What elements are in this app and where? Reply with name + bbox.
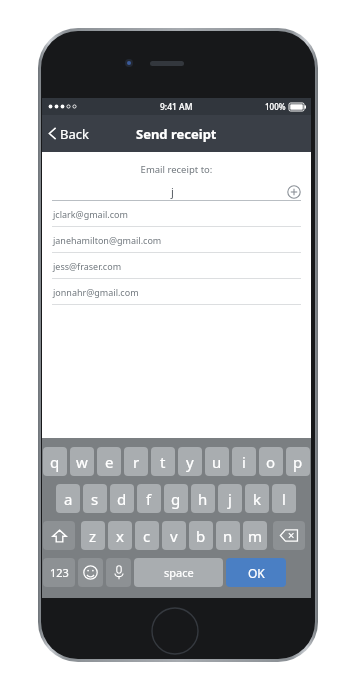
button[interactable]: r (124, 447, 148, 476)
staticText: m (248, 526, 263, 546)
staticText: r (133, 452, 140, 472)
button[interactable]: n (216, 521, 240, 550)
button[interactable]: jclark@gmail.com (42, 201, 311, 227)
staticText: jess@fraser.com (53, 260, 122, 272)
staticText: jonnahr@gmail.com (53, 286, 139, 298)
staticText: e (105, 452, 114, 472)
button[interactable]: Backspace (273, 521, 305, 550)
button[interactable]: v (162, 521, 186, 550)
button[interactable]: Add recipient (287, 185, 301, 199)
button[interactable]: Back (42, 115, 97, 152)
button[interactable]: x (108, 521, 132, 550)
button[interactable]: j (218, 484, 242, 513)
staticText: g (171, 489, 181, 509)
staticText: s (91, 489, 99, 509)
staticText: w (76, 452, 88, 472)
button[interactable]: u (205, 447, 229, 476)
staticText: b (196, 526, 206, 546)
staticText: p (293, 452, 303, 472)
button[interactable]: m (243, 521, 267, 550)
button[interactable]: d (110, 484, 134, 513)
staticText: j (228, 489, 232, 509)
button[interactable]: z (81, 521, 105, 550)
staticText: a (64, 489, 73, 509)
staticText: jclark@gmail.com (53, 208, 128, 220)
button[interactable]: l (272, 484, 296, 513)
button[interactable]: Emoji (78, 558, 103, 587)
staticText: Send receipt (136, 125, 217, 143)
button[interactable]: q (43, 447, 67, 476)
button[interactable]: j (42, 183, 311, 200)
button[interactable]: Voice input (106, 558, 131, 587)
button[interactable]: s (83, 484, 107, 513)
button[interactable]: f (137, 484, 161, 513)
staticText: n (223, 526, 233, 546)
button[interactable]: space (134, 558, 223, 587)
staticText: Back (60, 125, 89, 143)
staticText: z (89, 526, 97, 546)
staticText: h (198, 489, 208, 509)
button[interactable]: jonnahr@gmail.com (42, 279, 311, 305)
staticText: 9:41 AM (160, 101, 193, 113)
staticText: 100% (265, 101, 286, 112)
staticText: y (186, 452, 194, 472)
button[interactable]: b (189, 521, 213, 550)
staticText: 123 (50, 565, 69, 580)
staticText: q (50, 452, 60, 472)
button[interactable]: t (151, 447, 175, 476)
button[interactable]: y (178, 447, 202, 476)
button[interactable]: Shift (43, 521, 75, 550)
staticText: u (212, 452, 222, 472)
staticText: c (143, 526, 151, 546)
button[interactable]: p (286, 447, 310, 476)
staticText: v (170, 526, 178, 546)
button[interactable]: k (245, 484, 269, 513)
staticText: j (171, 184, 174, 199)
staticText: i (242, 452, 246, 472)
button[interactable]: 123 (43, 558, 75, 587)
button[interactable]: i (232, 447, 256, 476)
button[interactable]: o (259, 447, 283, 476)
button[interactable]: c (135, 521, 159, 550)
staticText: l (282, 489, 286, 509)
button[interactable]: w (70, 447, 94, 476)
staticText: x (116, 526, 124, 546)
staticText: janehamilton@gmail.com (53, 234, 162, 246)
button[interactable]: janehamilton@gmail.com (42, 227, 311, 253)
staticText: k (253, 489, 262, 509)
button[interactable]: a (56, 484, 80, 513)
staticText: OK (248, 565, 265, 581)
staticText: o (266, 452, 276, 472)
staticText: t (160, 452, 166, 472)
button[interactable]: e (97, 447, 121, 476)
staticText: space (164, 565, 194, 580)
staticText: d (117, 489, 127, 509)
button[interactable]: jess@fraser.com (42, 253, 311, 279)
button[interactable]: h (191, 484, 215, 513)
button[interactable]: g (164, 484, 188, 513)
staticText: f (146, 489, 152, 509)
staticText: Email receipt to: (42, 163, 311, 176)
button[interactable]: OK (226, 558, 286, 587)
